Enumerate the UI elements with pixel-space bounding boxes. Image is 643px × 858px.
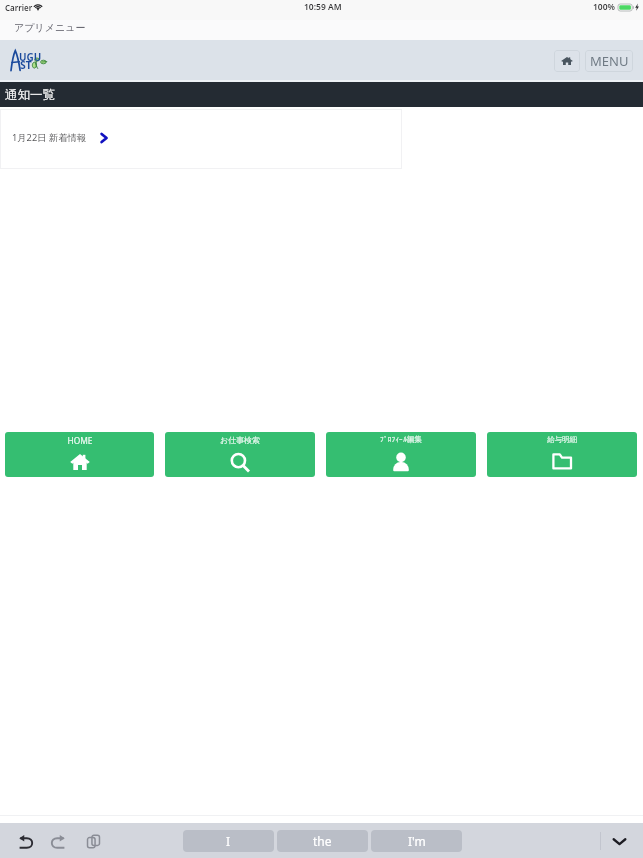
button[interactable]: Redo [47, 829, 71, 853]
button[interactable]: 1月22日 新着情報 [0, 109, 402, 169]
button[interactable]: I'm [371, 830, 462, 852]
button[interactable]: Undo [13, 829, 37, 853]
button[interactable]: the [277, 830, 368, 852]
staticText: I'm [408, 833, 426, 849]
staticText: アプリメニュー [14, 21, 86, 34]
staticText: ST [20, 58, 32, 72]
staticText: 1月22日 新着情報 [12, 131, 87, 144]
staticText: I [226, 833, 231, 849]
button[interactable]: I [183, 830, 274, 852]
staticText: MENU [590, 52, 629, 70]
staticText: UGU [19, 50, 42, 64]
button[interactable]: お仕事検索 [165, 432, 315, 477]
staticText: 10:59 AM [304, 1, 342, 13]
staticText: 給与明細 [547, 435, 577, 444]
button[interactable]: Hide keyboard [607, 829, 631, 853]
button[interactable]: ﾌﾟﾛﾌｨｰﾙ編集 [326, 432, 476, 477]
button[interactable]: 給与明細 [487, 432, 637, 477]
button[interactable]: Paste [81, 829, 105, 853]
staticText: ﾌﾟﾛﾌｨｰﾙ編集 [380, 435, 422, 443]
staticText: HOME [67, 435, 93, 446]
button[interactable]: Home [554, 50, 580, 72]
staticText: 通知一覧 [5, 87, 55, 103]
button[interactable]: HOME [5, 432, 154, 477]
staticText: 100% [593, 1, 616, 13]
staticText: お仕事検索 [220, 435, 260, 445]
button[interactable]: MENU [585, 50, 633, 72]
staticText: the [313, 833, 332, 849]
staticText: Carrier [5, 2, 33, 13]
